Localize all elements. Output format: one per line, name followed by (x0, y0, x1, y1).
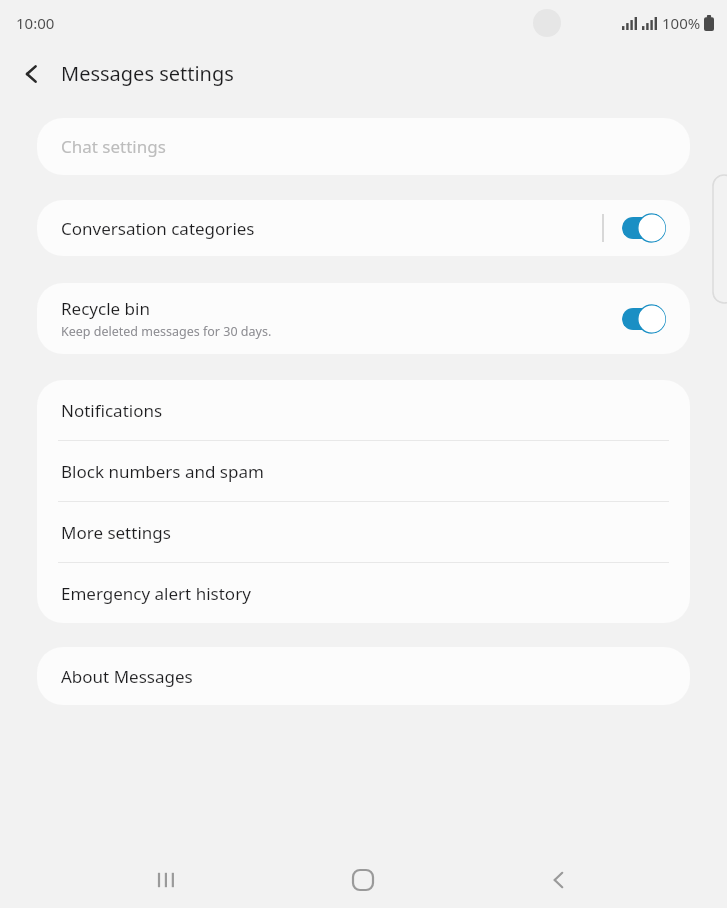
staticText: More settings (61, 521, 171, 544)
staticText: Conversation categories (61, 217, 602, 240)
button[interactable]: Home (335, 852, 391, 908)
button[interactable]: Conversation categories (37, 200, 690, 256)
staticText: Emergency alert history (61, 582, 251, 605)
staticText: Notifications (61, 399, 163, 422)
button[interactable]: Recent apps (139, 852, 195, 908)
staticText: 10:00 (16, 13, 55, 33)
staticText: Block numbers and spam (61, 460, 264, 483)
staticText: Chat settings (61, 135, 166, 158)
button[interactable]: Notifications (37, 380, 690, 440)
button[interactable]: Back (10, 52, 54, 96)
button[interactable]: Block numbers and spam (37, 441, 690, 501)
button[interactable]: Emergency alert history (37, 563, 690, 623)
button[interactable]: Toggle (622, 213, 666, 243)
staticText: Keep deleted messages for 30 days. (61, 323, 272, 340)
button[interactable]: Toggle (622, 304, 666, 334)
button[interactable]: Back (531, 852, 587, 908)
button[interactable]: Chat settings (37, 118, 690, 175)
staticText: Recycle bin (61, 297, 150, 320)
button[interactable]: About Messages (37, 647, 690, 705)
staticText: Messages settings (61, 60, 234, 87)
button[interactable]: More settings (37, 502, 690, 562)
staticText: About Messages (61, 665, 193, 688)
staticText: 100% (662, 13, 701, 33)
button[interactable]: Recycle bin (37, 283, 690, 354)
